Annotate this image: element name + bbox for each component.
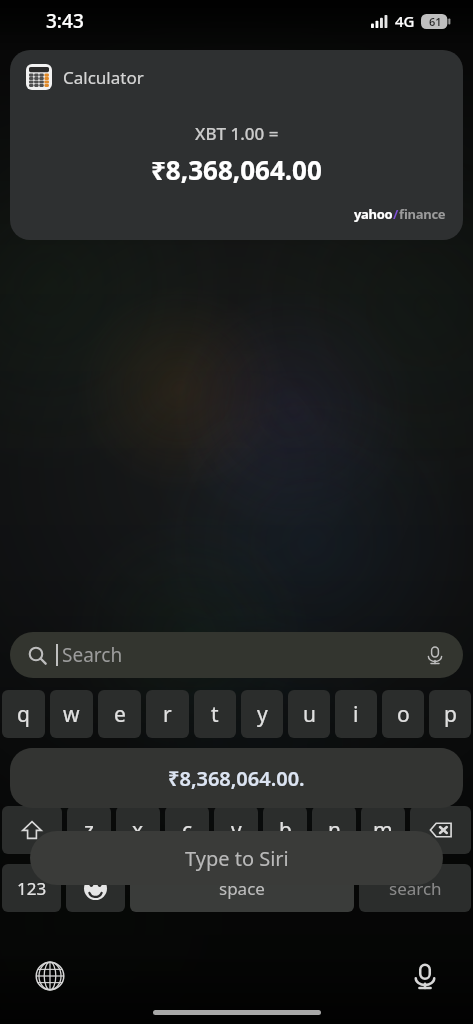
staticText: yahoo <box>354 205 393 223</box>
button[interactable]: Search <box>10 632 463 678</box>
staticText: XBT 1.00 = <box>195 122 279 145</box>
staticText: f <box>183 758 191 787</box>
staticText: n <box>328 816 341 845</box>
staticText: space <box>219 877 265 900</box>
button[interactable]: o <box>382 690 424 738</box>
staticText: t <box>211 700 219 729</box>
button[interactable]: u <box>288 690 330 738</box>
staticText: 3:43 <box>46 8 84 34</box>
button[interactable]: e <box>98 690 141 738</box>
button[interactable]: v <box>214 806 258 854</box>
button[interactable]: space <box>130 864 354 912</box>
button[interactable]: q <box>2 690 45 738</box>
button[interactable]: Type to Siri <box>30 831 443 885</box>
staticText: Calculator <box>63 66 144 89</box>
staticText: r <box>163 700 172 729</box>
button[interactable]: x <box>116 806 160 854</box>
button[interactable]: Key <box>2 806 62 854</box>
button[interactable]: Emoji <box>66 864 125 912</box>
button[interactable]: n <box>312 806 356 854</box>
button[interactable]: m <box>361 806 405 854</box>
button[interactable]: r <box>146 690 189 738</box>
button[interactable]: Key <box>410 806 471 854</box>
staticText: 4G <box>395 11 415 31</box>
staticText: ₹8,368,064.00 <box>151 152 322 187</box>
staticText: c <box>182 816 193 845</box>
button[interactable]: w <box>50 690 93 738</box>
staticText: w <box>63 700 80 729</box>
staticText: x <box>132 816 144 845</box>
button[interactable]: h <box>261 748 304 796</box>
staticText: h <box>276 758 289 787</box>
button[interactable]: Calculator <box>10 50 463 240</box>
staticText: p <box>444 700 457 729</box>
button[interactable]: f <box>166 748 208 796</box>
staticText: o <box>397 700 410 729</box>
staticText: Search <box>62 642 123 668</box>
staticText: / <box>393 205 399 223</box>
staticText: z <box>84 816 94 845</box>
button[interactable]: search <box>359 864 471 912</box>
button[interactable]: ₹8,368,064.00. <box>10 748 463 808</box>
staticText: b <box>279 816 292 845</box>
button[interactable]: z <box>67 806 111 854</box>
button[interactable]: p <box>429 690 471 738</box>
staticText: i <box>353 700 359 729</box>
staticText: m <box>373 816 393 845</box>
staticText: Type to Siri <box>185 845 289 872</box>
button[interactable]: t <box>194 690 236 738</box>
staticText: 123 <box>17 877 47 900</box>
staticText: g <box>228 758 241 787</box>
staticText: u <box>303 700 316 729</box>
staticText: q <box>17 700 30 729</box>
staticText: search <box>389 877 442 900</box>
staticText: y <box>257 700 268 729</box>
button[interactable]: Dictate <box>403 954 447 998</box>
button[interactable]: c <box>165 806 209 854</box>
button[interactable]: b <box>263 806 307 854</box>
staticText: 61 <box>429 14 442 29</box>
staticText: e <box>114 700 126 729</box>
staticText: finance <box>399 205 446 223</box>
staticText: ₹8,368,064.00. <box>168 765 305 792</box>
button[interactable]: y <box>241 690 283 738</box>
button[interactable]: Change keyboard language <box>28 954 72 998</box>
button[interactable]: g <box>213 748 256 796</box>
staticText: v <box>231 816 242 845</box>
button[interactable]: i <box>335 690 377 738</box>
button[interactable]: 123 <box>2 864 61 912</box>
